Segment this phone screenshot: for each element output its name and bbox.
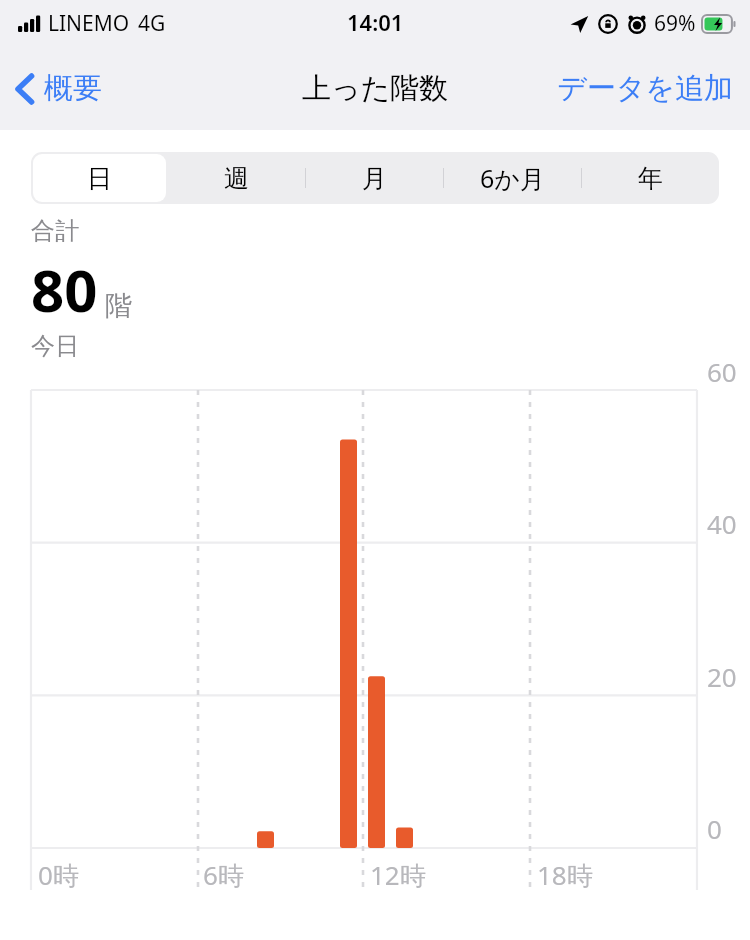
staticText: 階 [105,289,132,323]
staticText: 概要 [44,70,102,107]
button[interactable]: 6か月 [443,152,581,204]
button[interactable]: データを追加 [541,62,750,115]
staticText: 年 [638,163,663,194]
staticText: 0 [707,811,722,846]
staticText: 12時 [370,857,426,893]
staticText: 0時 [38,857,79,893]
staticText: 20 [707,659,737,694]
button[interactable]: 概要 [0,62,112,115]
button[interactable]: 月 [305,152,443,204]
staticText: LINEMO [48,9,130,38]
button[interactable]: 年 [581,152,719,204]
staticText: 18時 [537,857,593,893]
staticText: 6か月 [480,161,545,195]
staticText: 上った階数 [302,70,449,107]
staticText: 今日 [31,331,79,361]
staticText: 40 [707,506,737,541]
staticText: 合計 [31,216,79,246]
staticText: 60 [707,354,737,389]
staticText: 週 [224,163,249,194]
staticText: 月 [362,163,387,194]
staticText: データを追加 [557,70,734,107]
staticText: 69% [654,9,696,38]
staticText: 日 [87,163,112,194]
button[interactable]: 日 [31,152,168,204]
staticText: 14:01 [347,7,404,37]
staticText: 4G [138,9,166,38]
button[interactable]: 週 [168,152,305,204]
staticText: 6時 [203,857,244,893]
staticText: 80 [31,250,98,329]
